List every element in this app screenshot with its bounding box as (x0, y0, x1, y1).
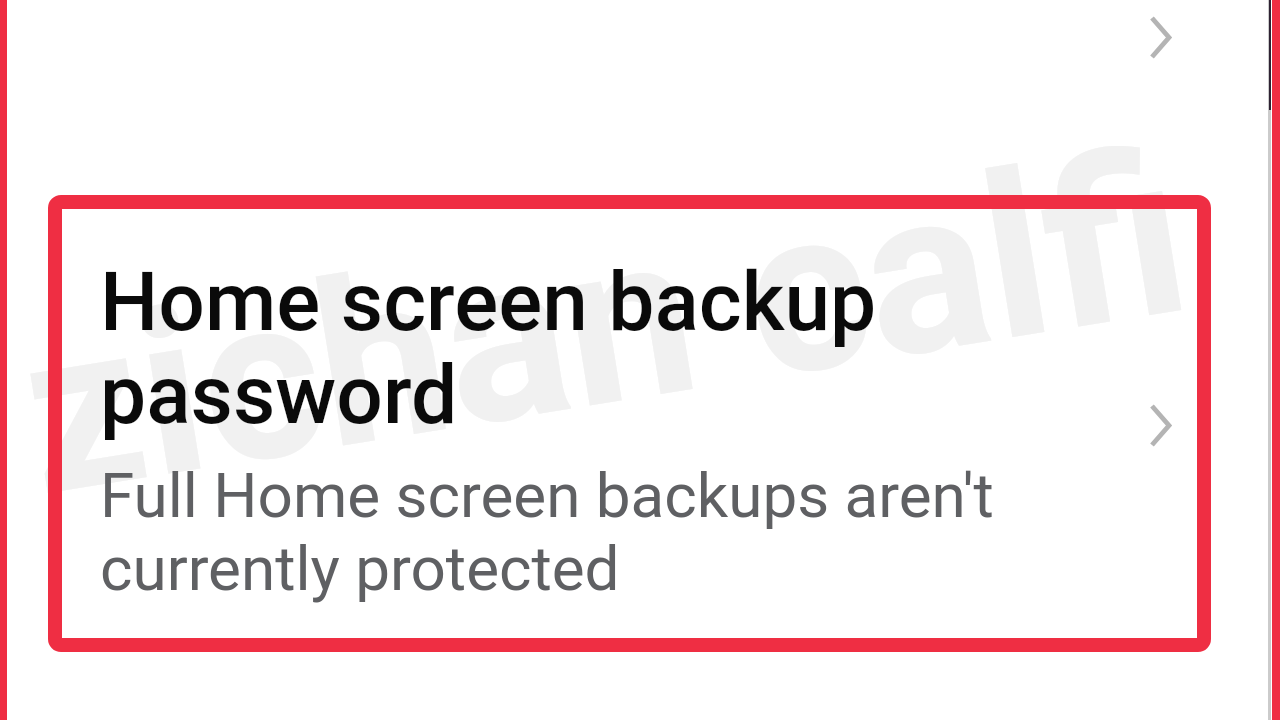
other: Open Home screen backup password (1100, 369, 1180, 481)
button[interactable]: Home screen backup password (48, 196, 1211, 652)
staticText: Home screen backup password (100, 254, 877, 443)
button[interactable]: Open previous setting (1100, 0, 1180, 75)
staticText: Full Home screen backups aren't currentl… (100, 459, 994, 605)
staticText: zichan calfi (6, 98, 1205, 549)
